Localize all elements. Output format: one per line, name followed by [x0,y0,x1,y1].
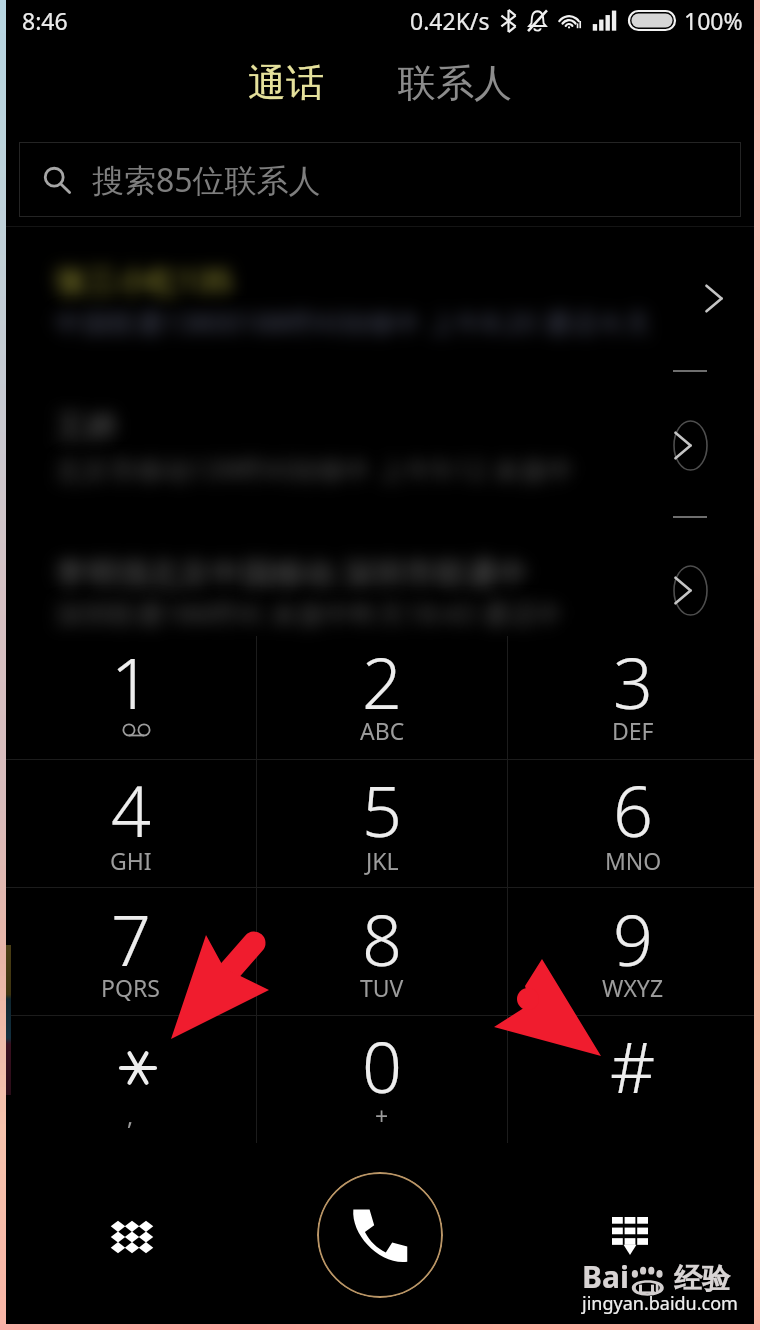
button[interactable]: 9 [508,888,758,1015]
button[interactable] [0,356,760,501]
staticText: 9 [613,891,653,986]
staticText: 5 [362,762,402,857]
button[interactable]: , [5,1016,256,1143]
staticText: 8:46 [22,5,68,36]
button[interactable]: 8 [257,888,507,1015]
staticText: 1 [111,634,151,729]
button[interactable]: 2 [257,636,507,759]
button[interactable]: 通话 [232,49,340,117]
staticText: , [127,1100,134,1131]
staticText: 2 [362,634,402,729]
staticText: TUV [360,972,404,1003]
staticText: 深圳联通186呼叫 未接中昨天18:43 通话中 [55,595,563,632]
button[interactable]: 6 [508,760,758,887]
staticText: MNO [605,845,662,876]
staticText: 3 [613,634,653,729]
button[interactable]: Hide keypad [594,1201,666,1273]
staticText: 搜索85位联系人 [92,158,321,202]
button[interactable]: 联系人 [382,49,528,117]
button[interactable] [0,501,760,636]
button[interactable]: Call details [673,565,708,616]
staticText: 张三小红135 [55,259,233,301]
staticText: 中国联通13800188呼叫转移中 上午8:20 通话今天 [55,304,652,341]
staticText: JKL [366,845,399,876]
button[interactable]: Call details [694,278,734,318]
button[interactable]: 5 [257,760,507,887]
button[interactable]: Dialer options [96,1201,168,1273]
staticText: ABC [360,715,405,746]
staticText: 0 [362,1018,402,1113]
staticText: WXYZ [602,972,664,1003]
staticText: 北京市移动139呼叫转移中 上午9:12 未接中 [55,451,574,488]
button[interactable]: 3 [508,636,758,759]
staticText: 经验 [674,1261,730,1296]
button[interactable]: 0 [257,1016,507,1143]
staticText: PQRS [101,972,160,1003]
staticText: 8 [362,891,402,986]
button[interactable]: 7 [5,888,256,1015]
button[interactable]: Call details [673,420,708,471]
staticText: # [610,1018,656,1113]
button[interactable]: 1 [5,636,256,759]
staticText: 通话 [248,59,324,107]
button[interactable]: Call [317,1172,443,1298]
button[interactable]: 4 [5,760,256,887]
staticText: 100% [684,5,743,36]
staticText: 李明强北京中国移动 深圳市联通中 [55,551,529,593]
staticText: DEF [612,715,654,746]
staticText: 王婷 [55,407,117,446]
staticText: 6 [613,762,653,857]
staticText: 7 [111,891,151,986]
button[interactable] [0,227,760,356]
button[interactable]: # [508,1016,758,1143]
button[interactable]: 搜索85位联系人 [19,142,741,217]
staticText: jingyan.baidu.com [582,1291,738,1316]
staticText: GHI [110,845,152,876]
staticText: 0.42K/s [410,5,490,36]
staticText: Bai [582,1256,629,1297]
staticText: + [375,1100,389,1131]
staticText: 联系人 [398,59,512,107]
staticText: 4 [111,762,151,857]
